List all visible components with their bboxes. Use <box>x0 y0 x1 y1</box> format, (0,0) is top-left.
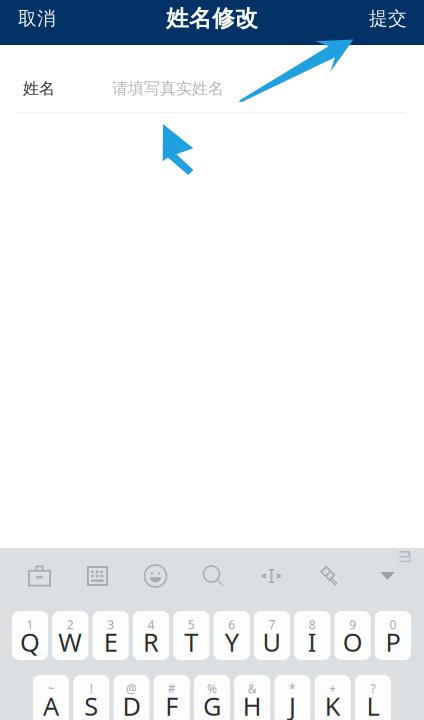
staticText: # <box>168 680 176 696</box>
staticText: U <box>262 625 281 659</box>
button[interactable]: 2 <box>52 611 88 660</box>
staticText: G <box>203 689 221 720</box>
staticText: 3 <box>107 616 114 632</box>
staticText: 姓名 <box>23 79 55 98</box>
staticText: I <box>308 625 317 659</box>
staticText: W <box>58 625 82 659</box>
staticText: ? <box>370 680 375 696</box>
staticText: O <box>343 625 363 659</box>
staticText: D <box>122 689 140 720</box>
button[interactable]: 0 <box>375 611 411 660</box>
staticText: 2 <box>67 616 74 632</box>
button[interactable]: 提交 <box>355 0 424 45</box>
staticText: ! <box>90 680 93 696</box>
staticText: @ <box>126 680 137 696</box>
staticText: H <box>243 689 262 720</box>
button[interactable]: Keyboard theme <box>300 548 358 604</box>
staticText: 0 <box>389 616 396 632</box>
button[interactable]: 1 <box>12 611 48 660</box>
staticText: E <box>104 625 118 659</box>
staticText: 取消 <box>18 7 56 30</box>
staticText: K <box>325 689 341 720</box>
button[interactable]: 4 <box>133 611 169 660</box>
staticText: & <box>248 680 257 696</box>
button[interactable]: 3 <box>93 611 129 660</box>
staticText: 6 <box>228 616 235 632</box>
button[interactable]: ? <box>355 675 391 720</box>
staticText: 1 <box>26 616 33 632</box>
staticText: 姓名修改 <box>166 5 258 32</box>
button[interactable]: 8 <box>294 611 330 660</box>
staticText: % <box>207 680 217 696</box>
button[interactable]: * <box>274 675 310 720</box>
button[interactable]: & <box>234 675 270 720</box>
button[interactable]: @ <box>113 675 149 720</box>
staticText: Y <box>225 625 239 659</box>
button[interactable]: ~ <box>33 675 69 720</box>
staticText: T <box>184 625 198 659</box>
button[interactable]: + <box>315 675 351 720</box>
staticText: 4 <box>147 616 154 632</box>
button[interactable]: % <box>194 675 230 720</box>
button[interactable]: Search <box>184 548 242 604</box>
button[interactable]: # <box>154 675 190 720</box>
staticText: R <box>143 625 159 659</box>
staticText: L <box>366 689 379 720</box>
staticText: F <box>165 689 178 720</box>
button[interactable]: Emoji <box>126 548 184 604</box>
staticText: Q <box>20 625 40 659</box>
staticText: 提交 <box>369 7 407 30</box>
staticText: 9 <box>349 616 356 632</box>
staticText: 7 <box>268 616 275 632</box>
button[interactable]: 5 <box>173 611 209 660</box>
staticText: J <box>289 689 296 720</box>
button[interactable]: ! <box>73 675 109 720</box>
button[interactable]: Move text cursor <box>242 548 300 604</box>
button[interactable]: 6 <box>214 611 250 660</box>
staticText: 8 <box>309 616 316 632</box>
button[interactable]: Keyboard layout <box>68 548 126 604</box>
button[interactable]: 姓名 <box>0 45 424 113</box>
button[interactable]: Clipboard <box>10 548 68 604</box>
button[interactable]: Hide keyboard <box>358 548 416 604</box>
staticText: * <box>289 680 296 696</box>
staticText: A <box>43 689 59 720</box>
button[interactable]: 取消 <box>0 0 70 45</box>
button[interactable]: 9 <box>335 611 371 660</box>
button[interactable]: 7 <box>254 611 290 660</box>
staticText: P <box>385 625 400 659</box>
staticText: + <box>329 680 336 696</box>
staticText: 5 <box>188 616 195 632</box>
staticText: S <box>84 689 98 720</box>
staticText: 请填写真实姓名 <box>112 79 224 98</box>
staticText: ~ <box>47 680 54 696</box>
